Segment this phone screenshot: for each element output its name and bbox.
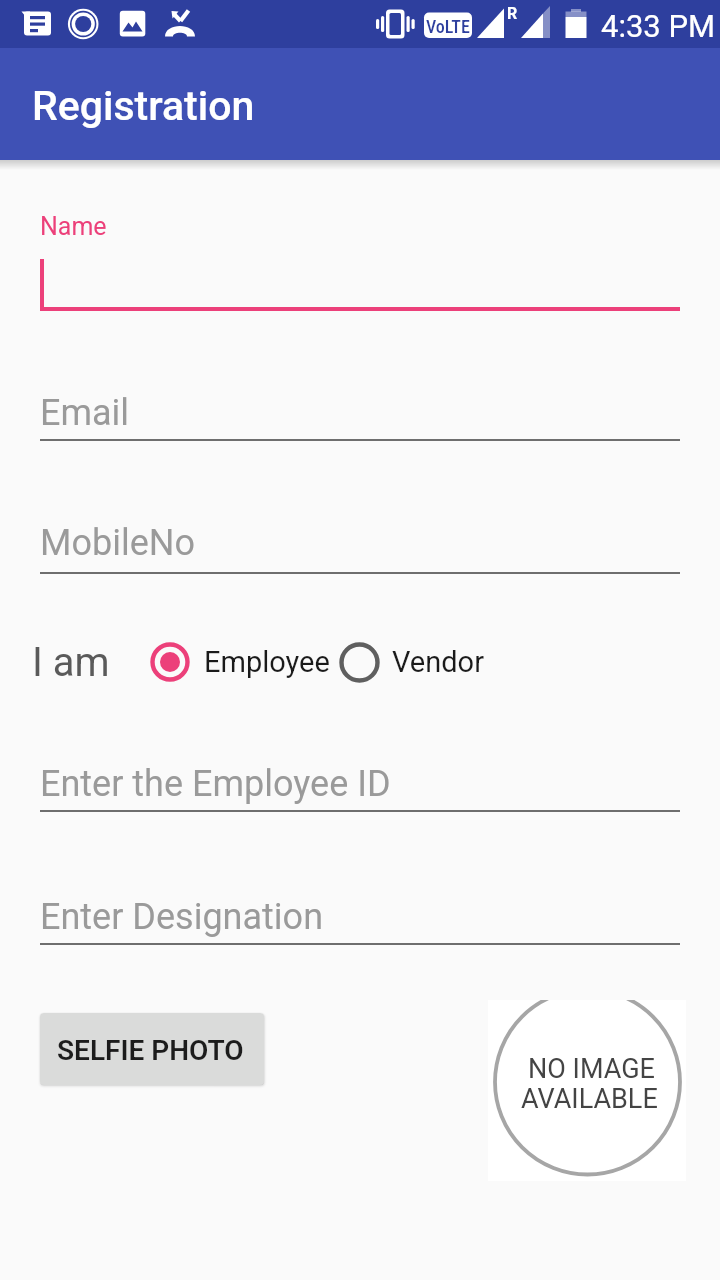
button[interactable]: No image available	[488, 1000, 686, 1181]
staticText: Enter Designation	[40, 896, 324, 938]
button[interactable]: Email	[40, 380, 680, 441]
staticText: Name	[40, 212, 107, 241]
staticText: Email	[40, 392, 130, 434]
staticText: Vendor	[392, 645, 484, 679]
button[interactable]: Enter the Employee ID	[40, 751, 680, 812]
staticText: AVAILABLE	[521, 1083, 658, 1115]
staticText: R	[507, 4, 518, 23]
button[interactable]: Enter Designation	[40, 884, 680, 945]
button[interactable]: MobileNo	[40, 510, 680, 574]
staticText: Employee	[204, 645, 330, 679]
staticText: VoLTE	[426, 16, 470, 37]
button[interactable]: Employee	[150, 642, 330, 682]
staticText: NO IMAGE	[528, 1053, 655, 1085]
staticText: SELFIE PHOTO	[57, 1034, 244, 1067]
button[interactable]: SELFIE PHOTO	[40, 1013, 264, 1085]
staticText: Registration	[32, 82, 255, 130]
button[interactable]: Vendor	[339, 642, 484, 682]
staticText: I am	[32, 639, 110, 686]
staticText: 4:33 PM	[601, 8, 716, 44]
staticText: MobileNo	[40, 522, 195, 564]
staticText: Enter the Employee ID	[40, 763, 391, 805]
